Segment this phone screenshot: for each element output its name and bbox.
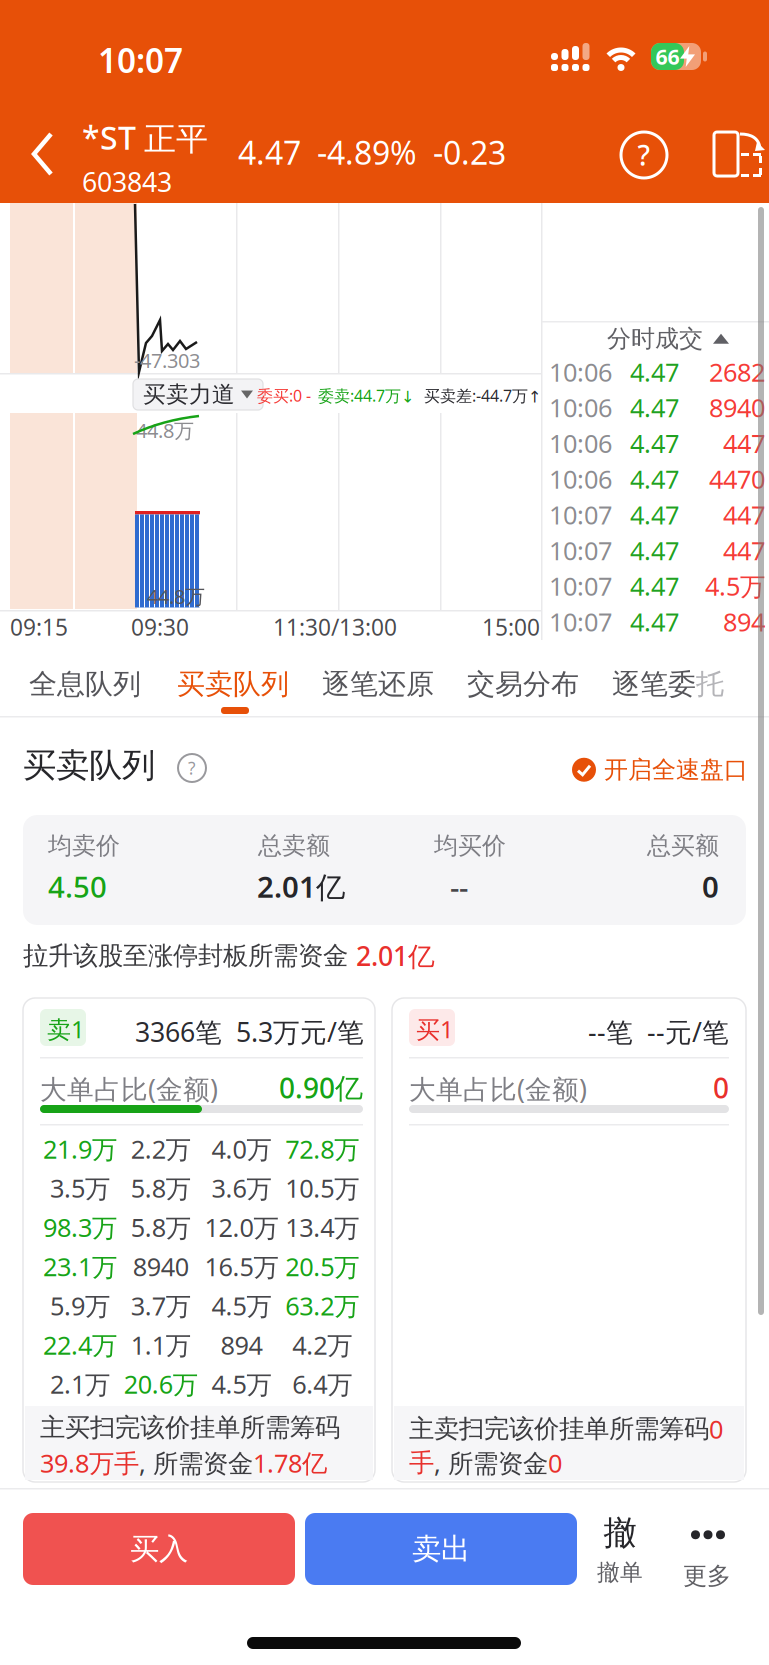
staticText: 0	[702, 867, 719, 906]
staticText: 13.4万	[285, 1210, 359, 1244]
staticText: 4.47 -4.89% -0.23	[238, 131, 506, 173]
staticText: 66	[655, 42, 679, 71]
staticText: 委卖:44.7万↓	[318, 385, 414, 406]
staticText: 10.5万	[285, 1171, 359, 1205]
staticText: 卖出	[412, 1531, 470, 1567]
staticText: 39.8万手	[40, 1446, 139, 1480]
staticText: 4.47	[630, 355, 679, 389]
staticText: 大单占比(金额)	[409, 1071, 587, 1106]
staticText: 10:06	[549, 391, 612, 424]
staticText: 10:06	[549, 426, 612, 460]
staticText: 3366笔 5.3万元/笔	[135, 1014, 364, 1049]
staticText: 撤	[603, 1512, 636, 1553]
staticText: 21.9万	[43, 1132, 117, 1166]
staticText: 44.8万	[136, 417, 194, 444]
staticText: 2.1万	[50, 1367, 110, 1401]
button[interactable]: 逐笔委	[612, 659, 724, 709]
staticText: 63.2万	[285, 1289, 359, 1322]
button[interactable]: Back	[24, 124, 61, 184]
staticText: 5.8万	[131, 1210, 191, 1244]
staticText: 2.01亿	[257, 867, 345, 906]
button[interactable]: 卖出	[305, 1513, 577, 1585]
button[interactable]: 交易分布	[467, 659, 579, 709]
staticText: 买卖队列	[177, 667, 289, 701]
staticText: 23.1万	[43, 1250, 117, 1283]
staticText: 16.5万	[204, 1250, 278, 1283]
button[interactable]: 逐笔还原	[322, 659, 434, 709]
staticText: 均卖价	[48, 831, 120, 860]
button[interactable]: 分时成交	[607, 324, 729, 353]
staticText: 3.7万	[131, 1289, 191, 1322]
staticText: , 所需资金	[434, 1446, 548, 1480]
staticText: -47.303	[134, 347, 200, 374]
button[interactable]: 买卖力道	[133, 379, 263, 410]
staticText: 4.5万	[705, 569, 765, 603]
staticText: 委买:0 -	[257, 385, 311, 406]
staticText: 4.47	[630, 533, 679, 567]
staticText: 全息队列	[29, 667, 141, 701]
button[interactable]: 全息队列	[29, 659, 141, 709]
staticText: 买卖差:-44.7万↑	[424, 385, 541, 406]
staticText: 1.1万	[131, 1328, 191, 1362]
staticText: 主卖扫完该价挂单所需筹码	[409, 1413, 709, 1444]
staticText: 4.50	[48, 867, 107, 906]
button[interactable]: 买卖队列	[177, 659, 289, 709]
staticText: ?	[188, 756, 196, 779]
button[interactable]: 买入	[23, 1513, 295, 1585]
staticText: 10:07	[549, 569, 612, 603]
staticText: 撤单	[597, 1558, 643, 1586]
staticText: 0.90亿	[279, 1069, 363, 1106]
staticText: 0	[548, 1446, 562, 1480]
staticText: 3.6万	[211, 1171, 271, 1205]
staticText: 5.8万	[131, 1171, 191, 1205]
staticText: 10:07	[549, 605, 612, 638]
staticText: 总卖额	[258, 831, 330, 860]
staticText: 12.0万	[204, 1210, 278, 1244]
staticText: *ST 正平	[82, 116, 208, 159]
staticText: 2.2万	[131, 1132, 191, 1166]
staticText: 2682	[709, 355, 765, 389]
button[interactable]: 撤	[583, 1507, 657, 1593]
staticText: 10:06	[549, 462, 612, 496]
staticText: --	[450, 867, 468, 906]
staticText: --笔 --元/笔	[588, 1014, 729, 1049]
staticText: 894	[220, 1328, 262, 1362]
staticText: 分时成交	[607, 324, 703, 353]
staticText: 买1	[416, 1013, 454, 1045]
staticText: 20.6万	[124, 1367, 198, 1401]
staticText: 10:07	[549, 498, 612, 531]
staticText: 2.01亿	[356, 938, 435, 973]
staticText: 4.5万	[211, 1367, 271, 1401]
staticText: ?	[637, 136, 650, 174]
staticText: 20.5万	[285, 1250, 359, 1283]
staticText: 5.9万	[50, 1289, 110, 1322]
staticText: 8940	[133, 1250, 189, 1283]
staticText: 4.47	[630, 426, 679, 460]
staticText: 8940	[709, 391, 765, 424]
staticText: 交易分布	[467, 667, 579, 701]
button[interactable]: Switch to landscape	[701, 131, 751, 177]
staticText: 买卖力道	[143, 381, 235, 408]
staticText: 4.47	[630, 462, 679, 496]
staticText: 主买扫完该价挂单所需筹码	[40, 1412, 340, 1443]
staticText: 0	[713, 1069, 729, 1106]
staticText: 4.47	[630, 391, 679, 424]
staticText: 1.78亿	[253, 1446, 327, 1480]
staticText: , 所需资金	[139, 1446, 253, 1480]
staticText: 44.8万	[147, 583, 205, 610]
staticText: 894	[723, 605, 765, 638]
staticText: 4.5万	[211, 1289, 271, 1322]
staticText: 09:30	[131, 612, 189, 642]
button[interactable]: 更多	[670, 1507, 744, 1593]
staticText: 4.2万	[292, 1328, 352, 1362]
staticText: 买卖队列	[23, 745, 155, 786]
button[interactable]: 说明	[178, 754, 206, 782]
button[interactable]: Help	[621, 132, 667, 178]
staticText: 4.47	[630, 498, 679, 531]
staticText: 均买价	[434, 831, 506, 860]
button[interactable]: 开启全速盘口	[572, 755, 748, 784]
staticText: 72.8万	[285, 1132, 359, 1166]
staticText: 603843	[82, 164, 172, 199]
staticText: 447	[723, 533, 765, 567]
staticText: 4.47	[630, 605, 679, 638]
